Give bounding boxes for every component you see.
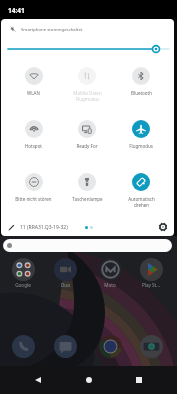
button[interactable]: Mobile Daten Flugmodus xyxy=(60,67,114,120)
button[interactable]: 11 (RRA31.Q3-19-32) xyxy=(8,224,68,231)
staticText: 14:41 xyxy=(8,6,25,15)
button[interactable]: App xyxy=(12,258,35,281)
button[interactable]: Search xyxy=(3,239,172,252)
button[interactable]: App xyxy=(140,335,163,358)
button[interactable]: Recents xyxy=(129,370,149,390)
button[interactable]: Automatisch drehen xyxy=(114,173,168,226)
staticText: Hotspot xyxy=(25,143,42,149)
button[interactable]: Flugmodus xyxy=(114,120,168,173)
staticText: Play St... xyxy=(142,282,160,288)
button[interactable]: Taschenlampe xyxy=(60,173,114,226)
button[interactable]: App xyxy=(54,335,77,358)
button[interactable]: Hotspot xyxy=(7,120,60,173)
button[interactable]: Ready For xyxy=(60,120,114,173)
staticText: Flugmodus xyxy=(129,143,153,149)
button[interactable]: App xyxy=(140,258,163,281)
staticText: Smartphone stummgeschaltet xyxy=(21,26,83,32)
staticText: WLAN xyxy=(27,90,40,96)
button[interactable]: Bluetooth xyxy=(114,67,168,120)
button[interactable]: App xyxy=(12,335,35,358)
staticText: Bluetooth xyxy=(131,90,152,96)
button[interactable]: App xyxy=(54,258,77,281)
staticText: Automatisch drehen xyxy=(128,196,155,208)
staticText: Duo xyxy=(61,282,70,288)
button[interactable]: Back xyxy=(28,370,48,390)
button[interactable]: Bitte nicht stören xyxy=(7,173,60,226)
staticText: Taschenlampe xyxy=(72,196,103,202)
staticText: 11 (RRA31.Q3-19-32) xyxy=(20,224,68,231)
button[interactable]: Home xyxy=(79,370,99,390)
button[interactable]: App xyxy=(99,335,122,358)
button[interactable]: App xyxy=(99,258,122,281)
staticText: Google xyxy=(15,282,31,288)
staticText: Bitte nicht stören xyxy=(15,196,52,202)
staticText: Ready For xyxy=(76,143,98,149)
staticText: Moto xyxy=(104,282,116,288)
staticText: Mobile Daten Flugmodus xyxy=(73,90,102,102)
button[interactable]: Settings xyxy=(156,220,170,234)
button[interactable]: WLAN xyxy=(7,67,60,120)
